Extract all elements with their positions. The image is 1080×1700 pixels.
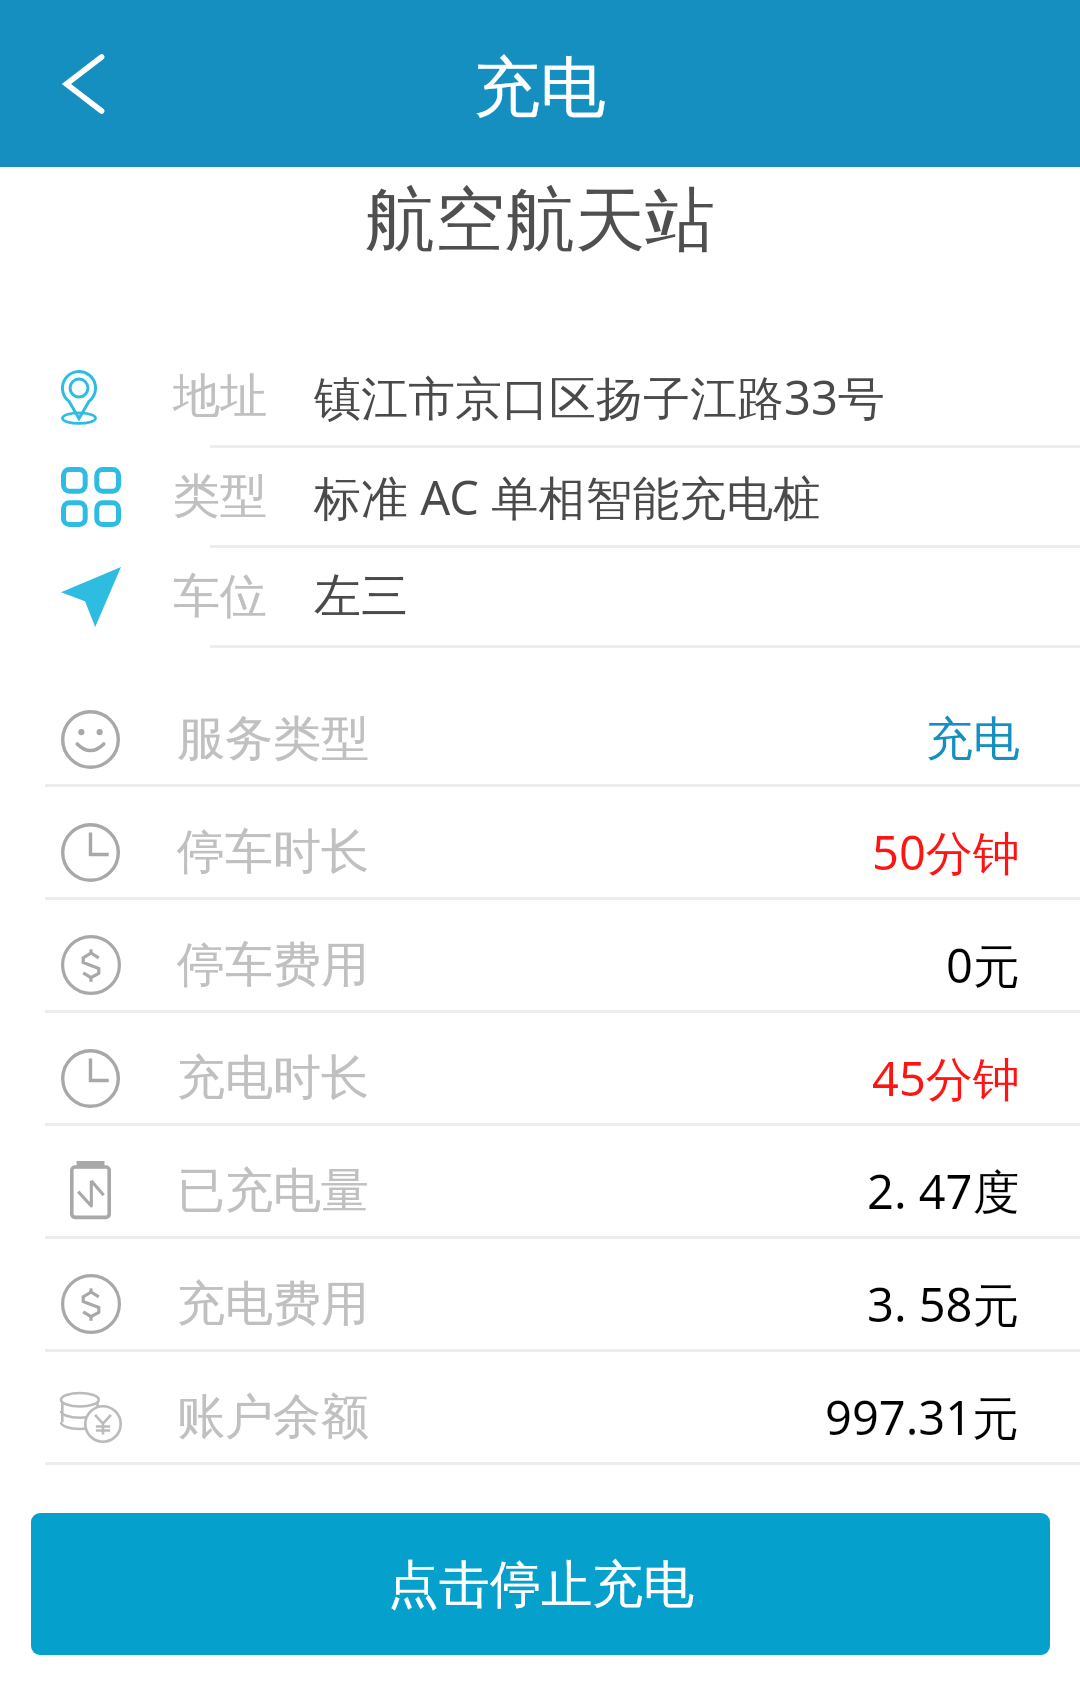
staticText: 服务类型 — [177, 709, 369, 769]
staticText: 50分钟 — [872, 820, 1020, 884]
button[interactable]: 充电费用 — [0, 1239, 1080, 1349]
button[interactable]: 服务类型 — [0, 674, 1080, 784]
staticText: 左三 — [314, 567, 408, 626]
staticText: 停车费用 — [177, 935, 369, 995]
button[interactable]: 停车费用 — [0, 900, 1080, 1010]
staticText: 类型 — [173, 467, 267, 526]
staticText: 充电费用 — [177, 1274, 369, 1334]
staticText: 2. 47度 — [867, 1159, 1020, 1223]
button[interactable]: 点击停止充电 — [31, 1513, 1050, 1655]
button[interactable]: Back — [24, 24, 144, 144]
staticText: 997.31元 — [825, 1385, 1020, 1449]
button[interactable]: 地址 — [0, 348, 1080, 445]
button[interactable]: 充电时长 — [0, 1013, 1080, 1123]
staticText: 45分钟 — [872, 1046, 1020, 1110]
button[interactable]: 类型 — [0, 448, 1080, 545]
button[interactable]: 停车时长 — [0, 787, 1080, 897]
staticText: 0元 — [946, 933, 1020, 997]
staticText: 账户余额 — [177, 1387, 369, 1447]
staticText: 标准 AC 单相智能充电桩 — [314, 465, 821, 529]
button[interactable]: 车位 — [0, 548, 1080, 645]
staticText: 地址 — [173, 367, 267, 426]
button[interactable]: 已充电量 — [0, 1126, 1080, 1236]
staticText: 充电 — [474, 46, 606, 129]
staticText: 充电时长 — [177, 1048, 369, 1108]
staticText: 充电 — [926, 710, 1020, 769]
staticText: 停车时长 — [177, 822, 369, 882]
button[interactable]: 账户余额 — [0, 1352, 1080, 1462]
staticText: 镇江市京口区扬子江路33号 — [314, 365, 885, 429]
staticText: 车位 — [173, 567, 267, 626]
staticText: 已充电量 — [177, 1161, 369, 1221]
staticText: 航空航天站 — [365, 177, 715, 265]
staticText: 点击停止充电 — [388, 1553, 694, 1617]
staticText: 3. 58元 — [867, 1272, 1020, 1336]
